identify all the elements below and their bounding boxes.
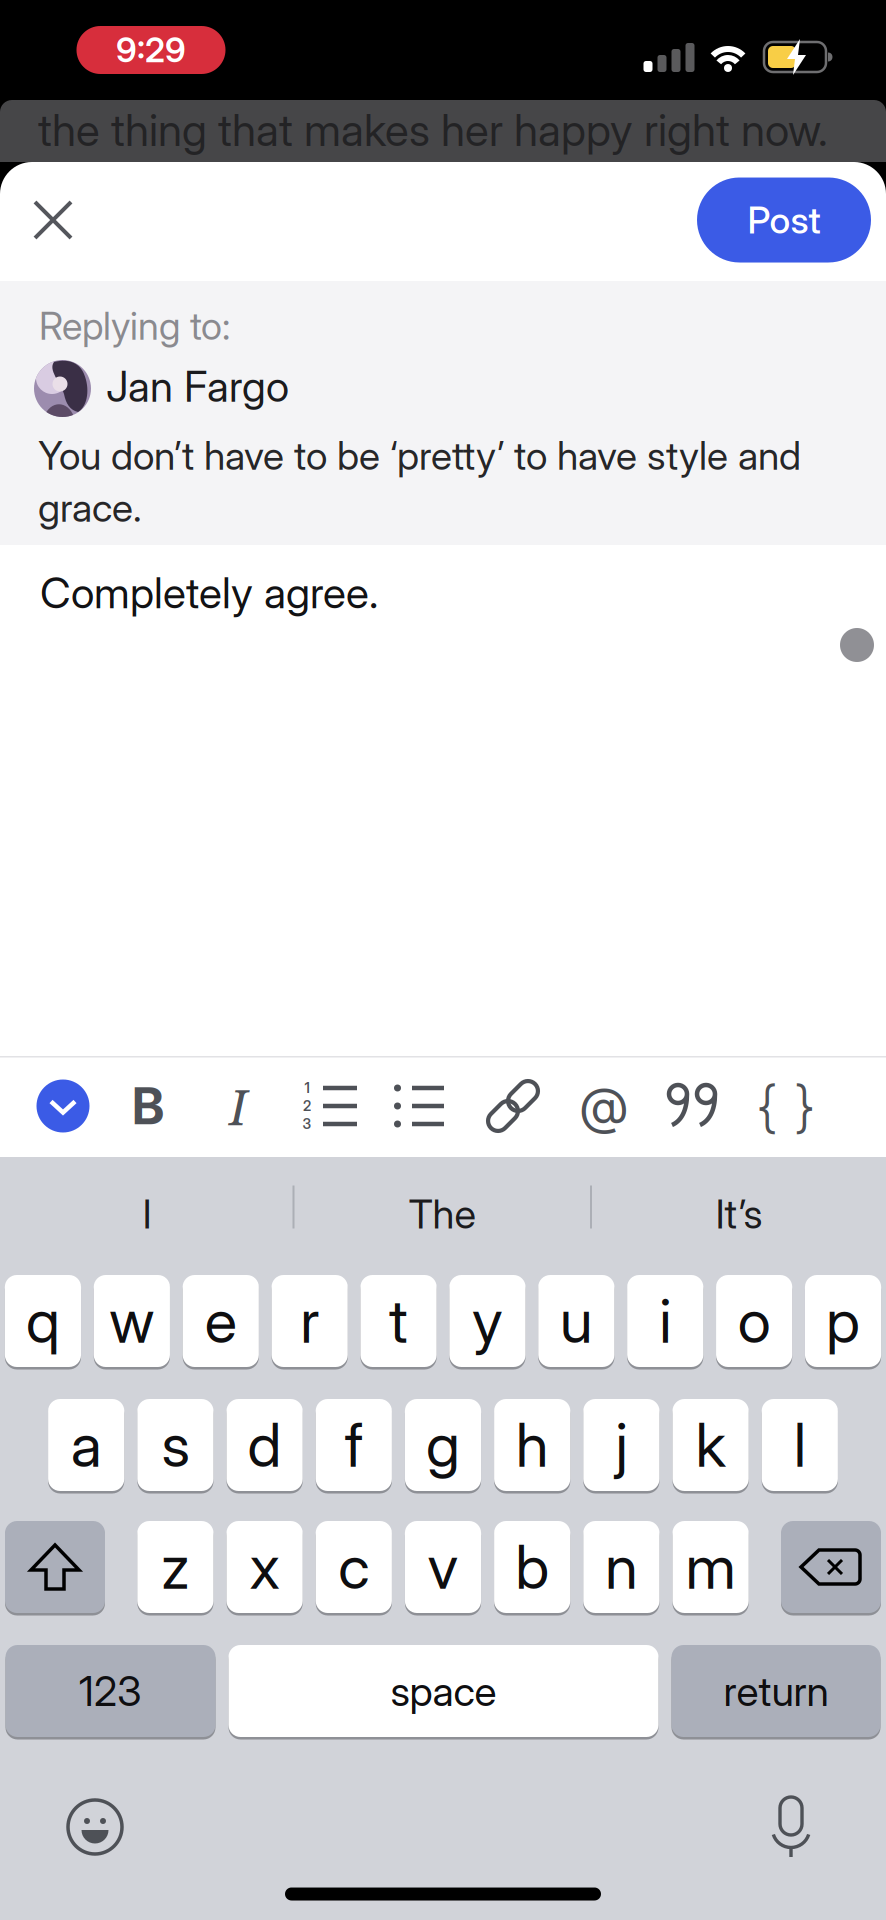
button[interactable]: It’s xyxy=(599,1171,879,1257)
staticText: n xyxy=(605,1531,638,1603)
staticText: } xyxy=(794,1072,815,1140)
button[interactable]: Numbered list xyxy=(295,1071,365,1141)
staticText: q xyxy=(26,1285,60,1357)
staticText: w xyxy=(109,1285,154,1357)
button[interactable]: Dictate xyxy=(763,1796,819,1858)
button[interactable]: s xyxy=(137,1397,213,1492)
staticText: m xyxy=(686,1531,736,1603)
button[interactable]: The xyxy=(302,1171,582,1257)
button[interactable]: I xyxy=(7,1171,287,1257)
button[interactable]: m xyxy=(672,1519,749,1614)
button[interactable]: Quote xyxy=(657,1071,731,1141)
staticText: Jan Fargo xyxy=(106,361,289,412)
button[interactable]: 123 xyxy=(5,1643,215,1738)
staticText: It’s xyxy=(715,1190,762,1238)
button[interactable]: o xyxy=(716,1273,792,1368)
button[interactable]: d xyxy=(226,1397,303,1492)
staticText: 123 xyxy=(79,1666,142,1716)
staticText: o xyxy=(738,1285,771,1357)
button[interactable]: p xyxy=(805,1273,881,1368)
button[interactable]: f xyxy=(316,1397,392,1492)
staticText: space xyxy=(390,1666,496,1716)
button[interactable]: w xyxy=(94,1273,170,1368)
button[interactable]: Shift xyxy=(5,1519,105,1614)
staticText: @ xyxy=(579,1076,628,1136)
button[interactable]: Code xyxy=(749,1071,823,1141)
button[interactable]: h xyxy=(494,1397,570,1492)
button[interactable]: Recording indicator, 9:29 xyxy=(76,26,225,74)
staticText: t xyxy=(389,1285,408,1357)
button[interactable]: Delete xyxy=(781,1519,881,1614)
staticText: the thing that makes her happy right now… xyxy=(38,103,828,157)
button[interactable]: c xyxy=(316,1519,392,1614)
staticText: c xyxy=(338,1531,369,1603)
staticText: 9:29 xyxy=(116,29,186,70)
staticText: g xyxy=(426,1409,460,1481)
button[interactable]: t xyxy=(360,1273,437,1368)
staticText: I xyxy=(142,1190,151,1238)
staticText: a xyxy=(71,1409,102,1481)
button[interactable]: g xyxy=(405,1397,481,1492)
staticText: x xyxy=(250,1531,280,1603)
staticText: 1 xyxy=(304,1079,309,1096)
staticText: y xyxy=(472,1285,503,1357)
staticText: i xyxy=(659,1285,671,1357)
button[interactable]: v xyxy=(405,1519,481,1614)
button[interactable]: Emoji xyxy=(67,1799,123,1855)
staticText: Completely agree. xyxy=(40,567,378,618)
staticText: Post xyxy=(747,198,820,242)
button[interactable]: u xyxy=(538,1273,614,1368)
staticText: Replying to: xyxy=(39,303,230,349)
button[interactable]: i xyxy=(627,1273,703,1368)
button[interactable]: j xyxy=(583,1397,659,1492)
staticText: l xyxy=(794,1409,806,1481)
staticText: v xyxy=(427,1531,458,1603)
button[interactable]: Italic xyxy=(203,1071,273,1141)
staticText: B xyxy=(132,1076,164,1136)
staticText: You don’t have to be ‘pretty’ to have st… xyxy=(38,432,801,479)
button[interactable]: e xyxy=(183,1273,259,1368)
staticText: z xyxy=(161,1531,190,1603)
button[interactable]: Insert link xyxy=(478,1071,548,1141)
staticText: return xyxy=(723,1666,828,1716)
staticText: r xyxy=(300,1285,319,1357)
button[interactable]: l xyxy=(762,1397,838,1492)
staticText: 3 xyxy=(302,1115,311,1132)
staticText: u xyxy=(560,1285,593,1357)
staticText: e xyxy=(205,1285,237,1357)
staticText: s xyxy=(161,1409,189,1481)
button[interactable]: Close xyxy=(31,198,75,242)
staticText: j xyxy=(615,1409,627,1481)
button[interactable]: b xyxy=(494,1519,570,1614)
staticText: h xyxy=(516,1409,549,1481)
button[interactable]: return xyxy=(671,1643,880,1738)
staticText: grace. xyxy=(38,484,142,531)
button[interactable]: n xyxy=(583,1519,659,1614)
button[interactable]: Bold xyxy=(113,1071,183,1141)
button[interactable]: q xyxy=(5,1273,81,1368)
button[interactable]: Dismiss keyboard xyxy=(36,1079,89,1132)
button[interactable]: Bulleted list xyxy=(386,1071,456,1141)
button[interactable]: a xyxy=(48,1397,124,1492)
button[interactable]: space xyxy=(228,1643,658,1738)
button[interactable]: y xyxy=(449,1273,525,1368)
button[interactable]: Mention xyxy=(569,1071,639,1141)
staticText: { xyxy=(756,1072,777,1140)
button[interactable]: r xyxy=(271,1273,348,1368)
staticText: I xyxy=(229,1072,247,1140)
staticText: k xyxy=(696,1409,726,1481)
staticText: The xyxy=(408,1190,475,1238)
button[interactable]: z xyxy=(137,1519,213,1614)
button[interactable]: k xyxy=(672,1397,749,1492)
staticText: 2 xyxy=(303,1097,311,1114)
button[interactable]: x xyxy=(226,1519,303,1614)
staticText: f xyxy=(345,1409,363,1481)
staticText: p xyxy=(826,1285,860,1357)
staticText: d xyxy=(248,1409,282,1481)
button[interactable]: Post xyxy=(697,177,871,262)
staticText: b xyxy=(515,1531,549,1603)
